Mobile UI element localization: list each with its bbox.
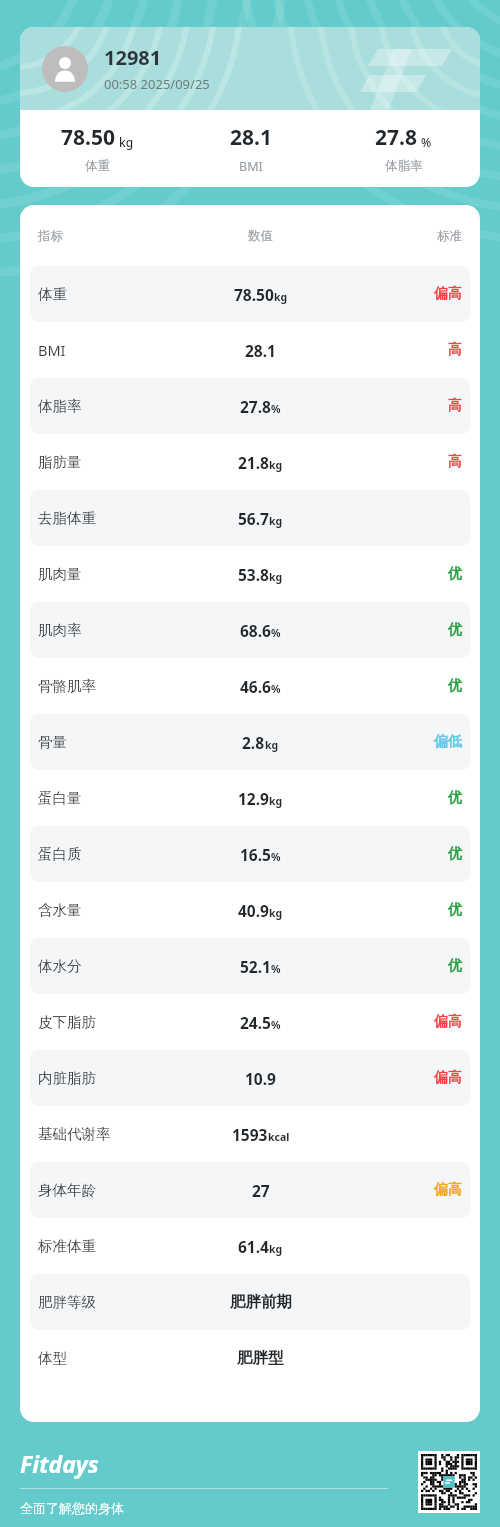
button[interactable]: 蛋白质 (30, 826, 470, 882)
button[interactable]: 肌肉量 (30, 546, 470, 602)
button[interactable]: 体重 (30, 266, 470, 322)
staticText: kg (269, 906, 283, 920)
staticText: 27 (252, 1180, 270, 1201)
staticText: 含水量 (38, 901, 82, 919)
staticText: % (271, 682, 281, 696)
staticText: % (271, 1018, 281, 1032)
button[interactable]: 体水分 (30, 938, 470, 994)
button[interactable]: BMI (30, 322, 470, 378)
staticText: kg (274, 290, 288, 304)
staticText: 78.50 (234, 284, 274, 305)
button[interactable]: 体型 (30, 1330, 470, 1386)
staticText: 骨量 (38, 733, 67, 751)
button[interactable]: 去脂体重 (30, 490, 470, 546)
staticText: 12.9 (238, 788, 269, 809)
staticText: 53.8 (238, 564, 269, 585)
staticText: 优 (448, 845, 462, 863)
staticText: 体脂率 (38, 397, 82, 415)
staticText: 体重 (38, 285, 67, 303)
staticText: 肥胖型 (237, 1348, 284, 1368)
button[interactable]: 肥胖等级 (30, 1274, 470, 1330)
staticText: 1593 (232, 1124, 268, 1145)
button[interactable]: 内脏脂肪 (30, 1050, 470, 1106)
button[interactable]: 12981 (20, 27, 480, 187)
staticText: 52.1 (240, 956, 271, 977)
staticText: % (271, 626, 281, 640)
staticText: 去脂体重 (38, 509, 96, 527)
staticText: 标准 (437, 228, 462, 244)
staticText: kg (269, 570, 283, 584)
staticText: 蛋白质 (38, 845, 82, 863)
button[interactable]: 蛋白量 (30, 770, 470, 826)
staticText: 12981 (104, 44, 162, 71)
button[interactable]: 身体年龄 (30, 1162, 470, 1218)
staticText: 优 (448, 957, 462, 975)
staticText: 优 (448, 789, 462, 807)
staticText: kg (265, 738, 279, 752)
staticText: 数值 (248, 228, 273, 244)
staticText: 皮下脂肪 (38, 1013, 96, 1031)
staticText: 肥胖前期 (230, 1292, 292, 1312)
staticText: 28.1 (245, 340, 276, 361)
staticText: 体水分 (38, 957, 82, 975)
staticText: 46.6 (240, 676, 271, 697)
staticText: 优 (448, 565, 462, 583)
staticText: 体型 (38, 1349, 67, 1367)
staticText: 21.8 (238, 452, 269, 473)
staticText: 28.1 (230, 123, 272, 152)
staticText: 68.6 (240, 620, 271, 641)
staticText: 61.4 (238, 1236, 269, 1257)
staticText: 高 (448, 341, 462, 359)
staticText: 偏高 (434, 1069, 462, 1087)
button[interactable]: 肌肉率 (30, 602, 470, 658)
staticText: 00:58 2025/09/25 (104, 75, 210, 93)
staticText: % (271, 850, 281, 864)
staticText: BMI (239, 158, 263, 175)
staticText: 2.8 (242, 732, 265, 753)
staticText: 24.5 (240, 1012, 271, 1033)
button[interactable]: 皮下脂肪 (30, 994, 470, 1050)
staticText: 偏高 (434, 1181, 462, 1199)
button[interactable]: 基础代谢率 (30, 1106, 470, 1162)
staticText: 偏高 (434, 285, 462, 303)
staticText: 肌肉量 (38, 565, 82, 583)
staticText: 体重 (85, 158, 110, 174)
staticText: 78.50 (61, 123, 115, 152)
staticText: 偏低 (434, 733, 462, 751)
staticText: kg (269, 458, 283, 472)
button[interactable]: 标准体重 (30, 1218, 470, 1274)
staticText: Fitdays (20, 1448, 99, 1479)
staticText: 10.9 (245, 1068, 276, 1089)
staticText: 内脏脂肪 (38, 1069, 96, 1087)
staticText: 高 (448, 397, 462, 415)
staticText: 偏高 (434, 1013, 462, 1031)
button[interactable]: 脂肪量 (30, 434, 470, 490)
button[interactable]: QR code (421, 1454, 477, 1510)
staticText: % (271, 962, 281, 976)
staticText: 27.8 (375, 123, 417, 152)
staticText: 标准体重 (38, 1237, 96, 1255)
staticText: 蛋白量 (38, 789, 82, 807)
button[interactable]: 体脂率 (30, 378, 470, 434)
staticText: 肌肉率 (38, 621, 82, 639)
staticText: % (421, 134, 432, 150)
staticText: 高 (448, 453, 462, 471)
staticText: 体脂率 (385, 158, 423, 174)
staticText: % (271, 402, 281, 416)
staticText: 脂肪量 (38, 453, 82, 471)
staticText: kg (269, 514, 283, 528)
staticText: 优 (448, 621, 462, 639)
staticText: 27.8 (240, 396, 271, 417)
staticText: kg (269, 1242, 283, 1256)
staticText: kcal (268, 1130, 290, 1144)
staticText: 16.5 (240, 844, 271, 865)
staticText: 肥胖等级 (38, 1293, 96, 1311)
button[interactable]: 骨骼肌率 (30, 658, 470, 714)
staticText: 骨骼肌率 (38, 677, 96, 695)
staticText: 基础代谢率 (38, 1125, 111, 1143)
button[interactable]: 含水量 (30, 882, 470, 938)
staticText: kg (119, 134, 134, 150)
staticText: 全面了解您的身体 (20, 1500, 124, 1516)
staticText: 优 (448, 677, 462, 695)
button[interactable]: 骨量 (30, 714, 470, 770)
